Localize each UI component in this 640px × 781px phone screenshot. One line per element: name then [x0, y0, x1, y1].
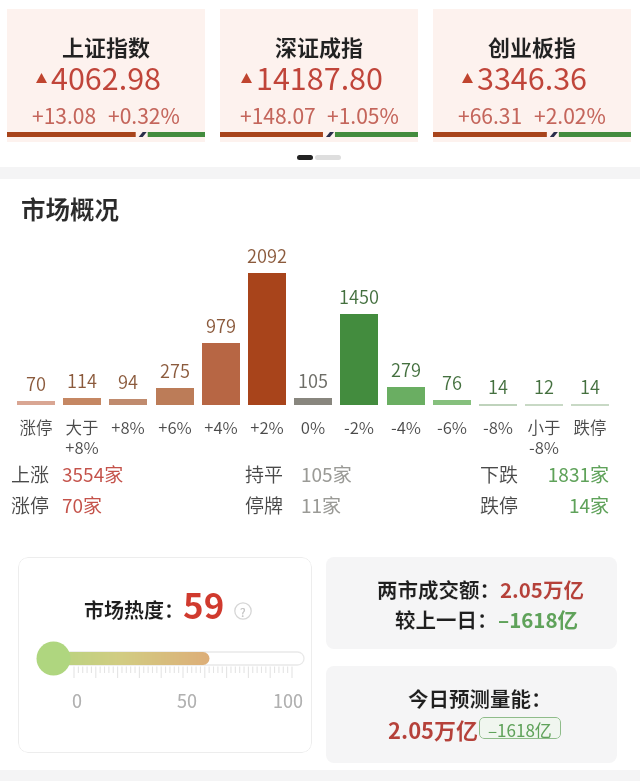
staticText: 100	[268, 687, 308, 713]
staticText: 跌停	[561, 415, 619, 439]
staticText: 12	[514, 373, 574, 399]
staticText: 0%	[284, 415, 342, 439]
staticText: 创业板指	[433, 30, 631, 62]
staticText: +1.05%	[327, 100, 399, 130]
staticText: 3554家	[62, 460, 124, 488]
staticText: 两市成交额：	[377, 574, 500, 604]
staticText: +8%	[99, 415, 157, 439]
staticText: 3346.36	[477, 55, 588, 99]
staticText: +6%	[146, 415, 204, 439]
staticText: 94	[98, 368, 158, 394]
staticText: ?	[240, 603, 246, 620]
staticText: +2%	[238, 415, 296, 439]
button[interactable]	[326, 666, 617, 763]
staticText: 114	[52, 367, 112, 393]
staticText: 979	[191, 312, 251, 338]
button[interactable]: 深证成指	[220, 9, 418, 142]
staticText: 14	[468, 373, 528, 399]
staticText: 上涨	[11, 460, 50, 488]
staticText: 较上一日：	[395, 604, 498, 634]
staticText: 76	[422, 369, 482, 395]
staticText: 14家	[489, 491, 609, 519]
button[interactable]: 上证指数	[7, 9, 205, 142]
button[interactable]: 创业板指	[433, 9, 631, 142]
staticText: –1618亿	[488, 717, 552, 739]
staticText: 59	[183, 578, 225, 629]
staticText: 105家	[301, 460, 352, 488]
staticText: 大于 +8%	[53, 415, 111, 458]
staticText: 下跌	[480, 460, 519, 488]
staticText: +0.32%	[108, 100, 180, 130]
staticText: -4%	[377, 415, 435, 439]
button[interactable]	[326, 557, 617, 649]
staticText: 小于 -8%	[515, 415, 573, 458]
staticText: 4062.98	[51, 55, 162, 99]
staticText: -2%	[330, 415, 388, 439]
staticText: +2.02%	[534, 100, 606, 130]
staticText: 停牌	[245, 491, 284, 519]
staticText: 2.05万亿	[388, 713, 479, 745]
staticText: 11家	[301, 491, 342, 519]
staticText: 跌停	[480, 491, 519, 519]
staticText: -8%	[469, 415, 527, 439]
staticText: 0	[57, 687, 97, 713]
staticText: +13.08	[32, 100, 97, 130]
button[interactable]: 帮助	[234, 602, 252, 620]
staticText: 275	[145, 357, 205, 383]
staticText: 14	[560, 373, 620, 399]
staticText: 今日预测量能：	[408, 683, 552, 713]
staticText: –1618亿	[498, 604, 579, 634]
staticText: 持平	[245, 460, 284, 488]
staticText: 1831家	[489, 460, 609, 488]
staticText: 1450	[329, 283, 389, 309]
staticText: 14187.80	[256, 55, 383, 99]
staticText: +66.31	[458, 100, 523, 130]
staticText: 市场热度：	[84, 595, 184, 624]
button[interactable]	[18, 557, 312, 753]
staticText: 上证指数	[7, 30, 205, 62]
staticText: +148.07	[240, 100, 316, 130]
staticText: 70家	[62, 491, 103, 519]
staticText: 市场概况	[21, 191, 119, 226]
staticText: 279	[376, 356, 436, 382]
staticText: 涨停	[11, 491, 50, 519]
staticText: 50	[167, 687, 207, 713]
staticText: 70	[6, 370, 66, 396]
staticText: 105	[283, 367, 343, 393]
staticText: 涨停	[7, 415, 65, 439]
staticText: -6%	[423, 415, 481, 439]
staticText: 2092	[237, 242, 297, 268]
staticText: 2.05万亿	[500, 574, 584, 604]
staticText: +4%	[192, 415, 250, 439]
staticText: 深证成指	[220, 30, 418, 62]
